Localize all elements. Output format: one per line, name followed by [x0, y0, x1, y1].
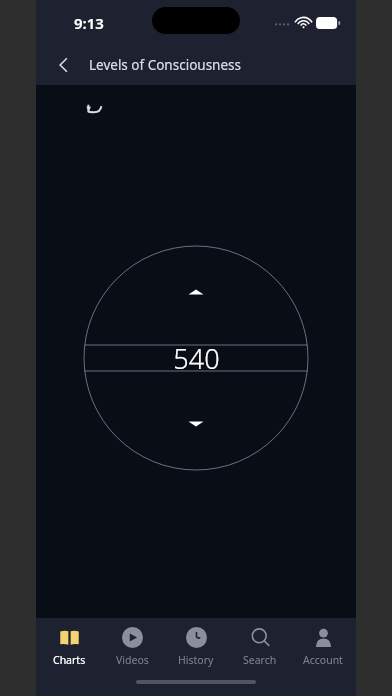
button[interactable]: History [165, 618, 227, 676]
staticText: Charts [53, 653, 86, 667]
button[interactable]: 540 [83, 245, 309, 471]
button[interactable]: Search [229, 618, 291, 676]
staticText: 9:13 [74, 13, 104, 33]
staticText: Search [243, 653, 277, 667]
staticText: Levels of Consciousness [89, 56, 242, 74]
staticText: Videos [116, 653, 149, 667]
staticText: History [178, 653, 214, 667]
button[interactable]: Videos [101, 618, 163, 676]
button[interactable]: Account [292, 618, 354, 676]
staticText: 540 [173, 340, 220, 377]
button[interactable]: Back [44, 45, 84, 85]
button[interactable]: Undo [80, 95, 108, 123]
staticText: Account [303, 653, 343, 667]
button[interactable]: Charts [38, 618, 100, 676]
